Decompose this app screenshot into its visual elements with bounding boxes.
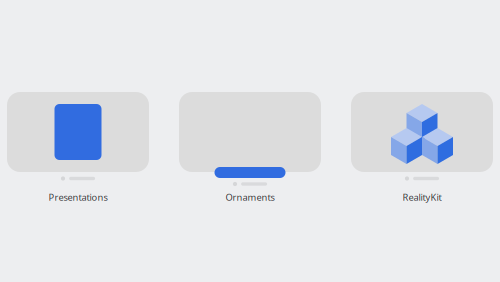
button[interactable]: RealityKit <box>351 92 493 203</box>
staticText: Ornaments <box>225 191 274 203</box>
button[interactable]: Ornaments <box>179 92 321 203</box>
button[interactable]: Presentations <box>7 92 149 203</box>
staticText: RealityKit <box>402 191 441 203</box>
staticText: Presentations <box>48 191 107 203</box>
